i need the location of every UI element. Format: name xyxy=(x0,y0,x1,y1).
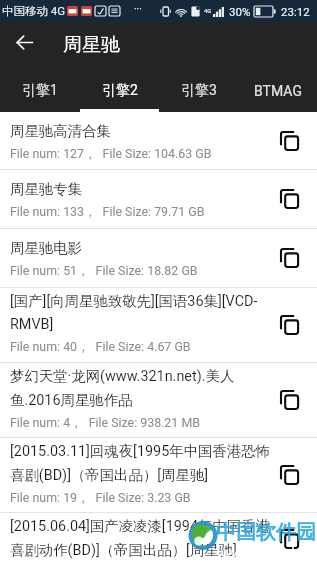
button[interactable]: [国产][向周星驰致敬先][国语36集][VCD- xyxy=(0,288,317,362)
staticText: 鱼.2016周星驰作品 xyxy=(10,391,133,409)
button[interactable]: 引擎1 xyxy=(0,66,80,112)
staticText: 周星驰专集 xyxy=(10,180,82,198)
button[interactable]: Copy xyxy=(272,241,306,275)
staticText: 中国移动 4G xyxy=(2,4,66,18)
staticText: RMVB] xyxy=(10,316,54,333)
button[interactable]: BTMAG xyxy=(238,66,317,112)
staticText: 引擎2 xyxy=(102,82,138,100)
staticText: 4G xyxy=(204,7,212,14)
button[interactable]: [2015.06.04]国产凌凌漆[1994年中国香港 xyxy=(0,513,317,564)
staticText: [2015.06.04]国产凌凌漆[1994年中国香港 xyxy=(10,517,270,535)
staticText: www.downkr.com xyxy=(221,543,317,562)
staticText: [2015.03.11]回魂夜[1995年中国香港恐怖 xyxy=(10,442,270,460)
staticText: File num: 133， File Size: 79.71 GB xyxy=(10,204,205,220)
button[interactable]: 周星驰高清合集 xyxy=(0,112,317,169)
staticText: File num: 127， File Size: 104.63 GB xyxy=(10,146,212,162)
button[interactable]: 周星驰电影 xyxy=(0,229,317,287)
staticText: File num: 4， File Size: 938.21 MB xyxy=(10,415,200,431)
button[interactable]: Back xyxy=(8,26,40,58)
button[interactable]: Copy xyxy=(272,458,306,492)
button[interactable]: Copy xyxy=(272,383,306,417)
staticText: 23:12 xyxy=(281,5,310,18)
staticText: 30% xyxy=(229,5,251,18)
staticText: File num: 19， File Size: 3.23 GB xyxy=(10,490,191,506)
button[interactable]: Copy xyxy=(272,308,306,342)
button[interactable]: 引擎3 xyxy=(159,66,238,112)
button[interactable]: 梦幻天堂·龙网(www.321n.net).美人 xyxy=(0,363,317,437)
staticText: 梦幻天堂·龙网(www.321n.net).美人 xyxy=(10,367,235,385)
staticText: 周星驰电影 xyxy=(10,239,82,257)
button[interactable]: Copy xyxy=(272,522,306,556)
staticText: File num: 51， File Size: 18.82 GB xyxy=(10,263,198,279)
staticText: ··· xyxy=(134,4,142,16)
staticText: 周星驰 xyxy=(63,33,120,57)
button[interactable]: Copy xyxy=(272,182,306,216)
staticText: 中国软件园 xyxy=(216,520,316,545)
button[interactable]: Copy xyxy=(272,124,306,158)
staticText: [国产][向周星驰致敬先][国语36集][VCD- xyxy=(10,292,258,310)
staticText: 引擎3 xyxy=(181,82,217,100)
staticText: File num: 40， File Size: 4.67 GB xyxy=(10,339,191,355)
button[interactable]: 引擎2 xyxy=(80,66,159,112)
staticText: 喜剧(BD)]（帝国出品）[周星驰] xyxy=(10,466,209,484)
staticText: BTMAG xyxy=(254,83,302,99)
staticText: 引擎1 xyxy=(22,82,58,100)
button[interactable]: [2015.03.11]回魂夜[1995年中国香港恐怖 xyxy=(0,438,317,512)
staticText: 周星驰高清合集 xyxy=(10,122,111,140)
staticText: 喜剧动作(BD)]（帝国出品）[周星驰] xyxy=(10,541,237,559)
button[interactable]: 周星驰专集 xyxy=(0,170,317,228)
